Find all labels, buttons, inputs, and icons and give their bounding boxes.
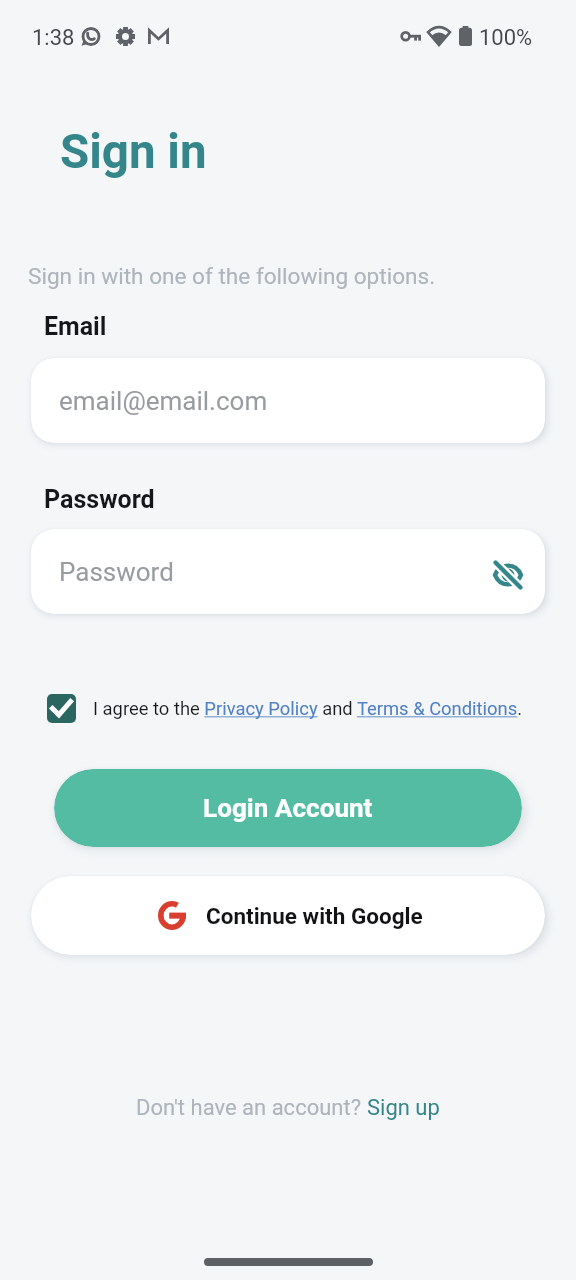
staticText: Email: [44, 312, 107, 341]
button[interactable]: Continue with Google: [31, 876, 545, 955]
staticText: Sign in with one of the following option…: [28, 263, 436, 289]
staticText: Don't have an account?: [136, 1095, 367, 1121]
staticText: email@email.com: [59, 386, 268, 416]
staticText: Password: [44, 485, 155, 514]
staticText: 1:38: [32, 25, 75, 51]
staticText: Login Account: [203, 793, 373, 824]
button[interactable]: Password: [31, 529, 545, 614]
button[interactable]: I agree checkbox: [47, 694, 76, 723]
button[interactable]: email@email.com: [31, 358, 545, 443]
button[interactable]: Sign up: [367, 1095, 440, 1121]
button[interactable]: Login Account: [54, 769, 522, 847]
button[interactable]: Show password: [487, 554, 529, 596]
staticText: 100%: [479, 25, 533, 51]
button[interactable]: I agree to the Privacy Policy and Terms …: [93, 698, 523, 720]
staticText: Continue with Google: [206, 903, 423, 929]
staticText: Sign in: [60, 124, 207, 180]
staticText: Sign up: [367, 1095, 440, 1121]
staticText: Password: [59, 557, 174, 587]
